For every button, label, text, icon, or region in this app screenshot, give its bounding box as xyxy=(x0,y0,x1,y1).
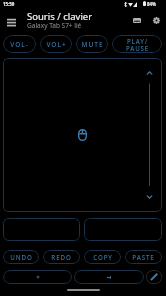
button[interactable]: PASTE xyxy=(125,250,162,264)
button[interactable]: Settings xyxy=(149,13,164,28)
button[interactable]: Touchpad xyxy=(3,58,162,212)
staticText: REDO xyxy=(51,253,72,261)
staticText: 15:59 xyxy=(3,1,15,7)
button[interactable]: VOL+ xyxy=(40,35,72,53)
staticText: VOL- xyxy=(10,40,29,49)
staticText: Souris / clavier xyxy=(27,10,93,23)
button[interactable]: COPY xyxy=(84,250,121,264)
button[interactable]: MUTE xyxy=(76,35,108,53)
staticText: MUTE xyxy=(81,40,104,49)
staticText: VOL+ xyxy=(46,40,67,49)
staticText: PASTE xyxy=(132,253,155,261)
staticText: COPY xyxy=(93,253,113,261)
button[interactable]: Left click xyxy=(3,218,80,241)
staticText: PLAY/ PAUSE xyxy=(126,37,149,52)
button[interactable]: PLAY/ PAUSE xyxy=(112,35,162,53)
button[interactable]: Draw xyxy=(146,270,162,284)
button[interactable]: Right click xyxy=(84,218,162,241)
button[interactable]: Back xyxy=(74,270,144,284)
staticText: Galaxy Tab S7+ lié xyxy=(27,21,82,30)
staticText: UNDO xyxy=(10,253,33,261)
button[interactable]: Move xyxy=(3,270,72,284)
button[interactable]: UNDO xyxy=(3,250,39,264)
button[interactable]: Menu xyxy=(3,14,19,30)
button[interactable]: REDO xyxy=(43,250,80,264)
button[interactable]: Keyboard xyxy=(129,13,144,28)
button[interactable]: VOL- xyxy=(3,35,36,53)
staticText: 84% xyxy=(147,1,156,7)
